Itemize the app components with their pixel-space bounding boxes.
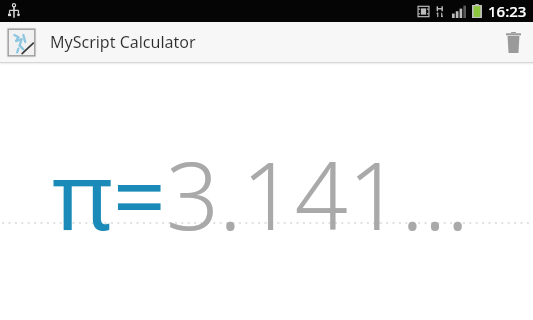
button[interactable]: MyScript Calculator <box>6 27 37 58</box>
staticText: MyScript Calculator <box>50 31 196 53</box>
button[interactable]: Clear <box>493 22 533 62</box>
staticText: π=3.141… <box>52 131 525 258</box>
staticText: 16:23 <box>488 1 527 21</box>
button[interactable]: Handwriting input area <box>0 65 533 320</box>
